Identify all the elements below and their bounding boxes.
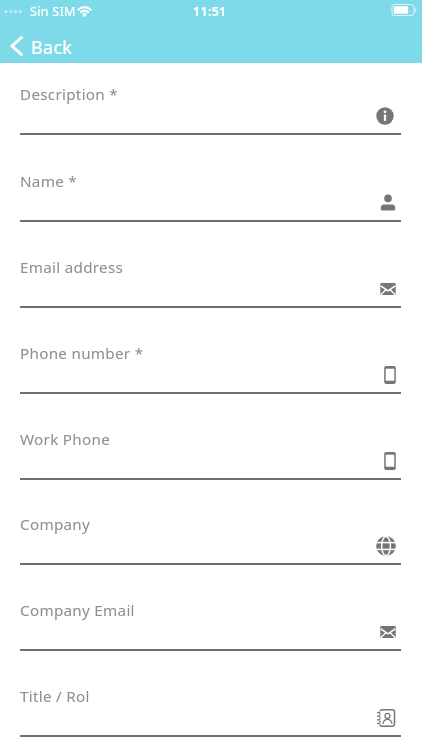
button[interactable]: Company <box>0 493 422 567</box>
staticText: Name * <box>20 171 77 192</box>
button[interactable]: Title / Rol <box>0 665 422 739</box>
button[interactable]: Email address <box>0 236 422 310</box>
button[interactable]: Back <box>0 27 100 63</box>
button[interactable]: Work Phone <box>0 408 422 482</box>
staticText: Company Email <box>20 600 135 621</box>
staticText: Description * <box>20 84 118 105</box>
staticText: Email address <box>20 257 124 278</box>
staticText: Work Phone <box>20 429 111 450</box>
button[interactable]: Company Email <box>0 579 422 653</box>
staticText: Sin SIM <box>30 3 76 20</box>
staticText: Title / Rol <box>20 686 90 707</box>
button[interactable]: Description * <box>0 63 422 137</box>
button[interactable]: Name * <box>0 150 422 224</box>
staticText: Back <box>31 35 73 60</box>
staticText: Company <box>20 514 91 535</box>
staticText: Phone number * <box>20 343 144 364</box>
staticText: 11:51 <box>193 3 227 20</box>
button[interactable]: Phone number * <box>0 322 422 396</box>
